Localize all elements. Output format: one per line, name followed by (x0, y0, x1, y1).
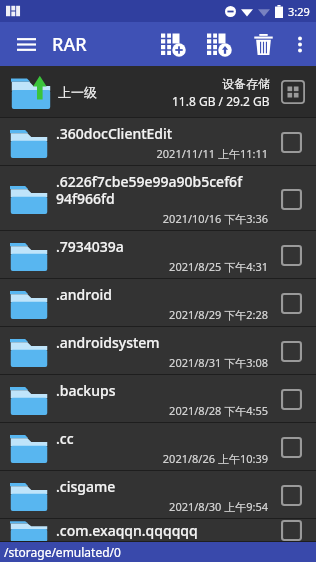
button[interactable]: Select .androidsystem (276, 336, 306, 366)
button[interactable]: .7934039a (0, 231, 316, 279)
button[interactable]: Delete (242, 22, 284, 66)
button[interactable]: Select .android (276, 288, 306, 318)
staticText: 2021/8/31 下午3:08 (56, 355, 268, 370)
button[interactable]: Add to archive (150, 22, 196, 66)
staticText: .cisgame (56, 477, 116, 496)
staticText: 2021/8/30 上午9:54 (56, 499, 268, 514)
button[interactable]: .androidsystem (0, 327, 316, 375)
button[interactable]: .cisgame (0, 471, 316, 519)
staticText: /storage/emulated/0 (4, 544, 121, 560)
staticText: .android (56, 285, 112, 304)
staticText: .7934039a (56, 237, 124, 256)
button[interactable]: .360docClientEdit (0, 118, 316, 166)
button[interactable]: More options (284, 22, 316, 66)
button[interactable]: Extract (196, 22, 242, 66)
button[interactable]: Grid view (280, 79, 306, 105)
staticText: .androidsystem (56, 333, 160, 352)
button[interactable]: .com.exaqqn.qqqqqq (0, 519, 316, 542)
button[interactable]: Select .backups (276, 384, 306, 414)
button[interactable]: .cc (0, 423, 316, 471)
button[interactable]: .android (0, 279, 316, 327)
button[interactable]: Select .cisgame (276, 480, 306, 510)
button[interactable]: .6226f7cbe59e99a90b5cef6f 94f966fd (0, 166, 316, 231)
staticText: 上一级 (58, 84, 97, 100)
button[interactable]: Select .6226f7cbe59e99a90b5cef6f 94f966f… (276, 184, 306, 214)
button[interactable]: Select .cc (276, 432, 306, 462)
staticText: .backups (56, 381, 116, 400)
staticText: 2021/11/11 上午11:11 (56, 146, 268, 161)
staticText: 2021/8/26 上午10:39 (56, 451, 268, 466)
button[interactable]: Select .7934039a (276, 240, 306, 270)
staticText: .com.exaqqn.qqqqqq (56, 521, 198, 540)
staticText: 设备存储 (222, 76, 270, 91)
staticText: .6226f7cbe59e99a90b5cef6f 94f966fd (56, 172, 243, 208)
button[interactable]: Select .360docClientEdit (276, 127, 306, 157)
staticText: .cc (56, 429, 74, 448)
staticText: 2021/10/16 下午3:36 (56, 211, 268, 226)
staticText: 2021/8/29 下午2:28 (56, 307, 268, 322)
staticText: RAR (52, 32, 87, 57)
staticText: 11.8 GB / 29.2 GB (172, 93, 270, 109)
staticText: 2021/8/28 下午4:55 (56, 403, 268, 418)
button[interactable]: /storage/emulated/0 (0, 542, 316, 562)
button[interactable]: 上一级 (0, 66, 316, 118)
button[interactable]: Menu (0, 22, 52, 66)
staticText: 2021/8/25 下午4:31 (56, 259, 268, 274)
staticText: .360docClientEdit (56, 124, 173, 143)
button[interactable]: Select .com.exaqqn.qqqqqq (276, 519, 306, 542)
button[interactable]: .backups (0, 375, 316, 423)
staticText: 3:29 (288, 4, 310, 19)
